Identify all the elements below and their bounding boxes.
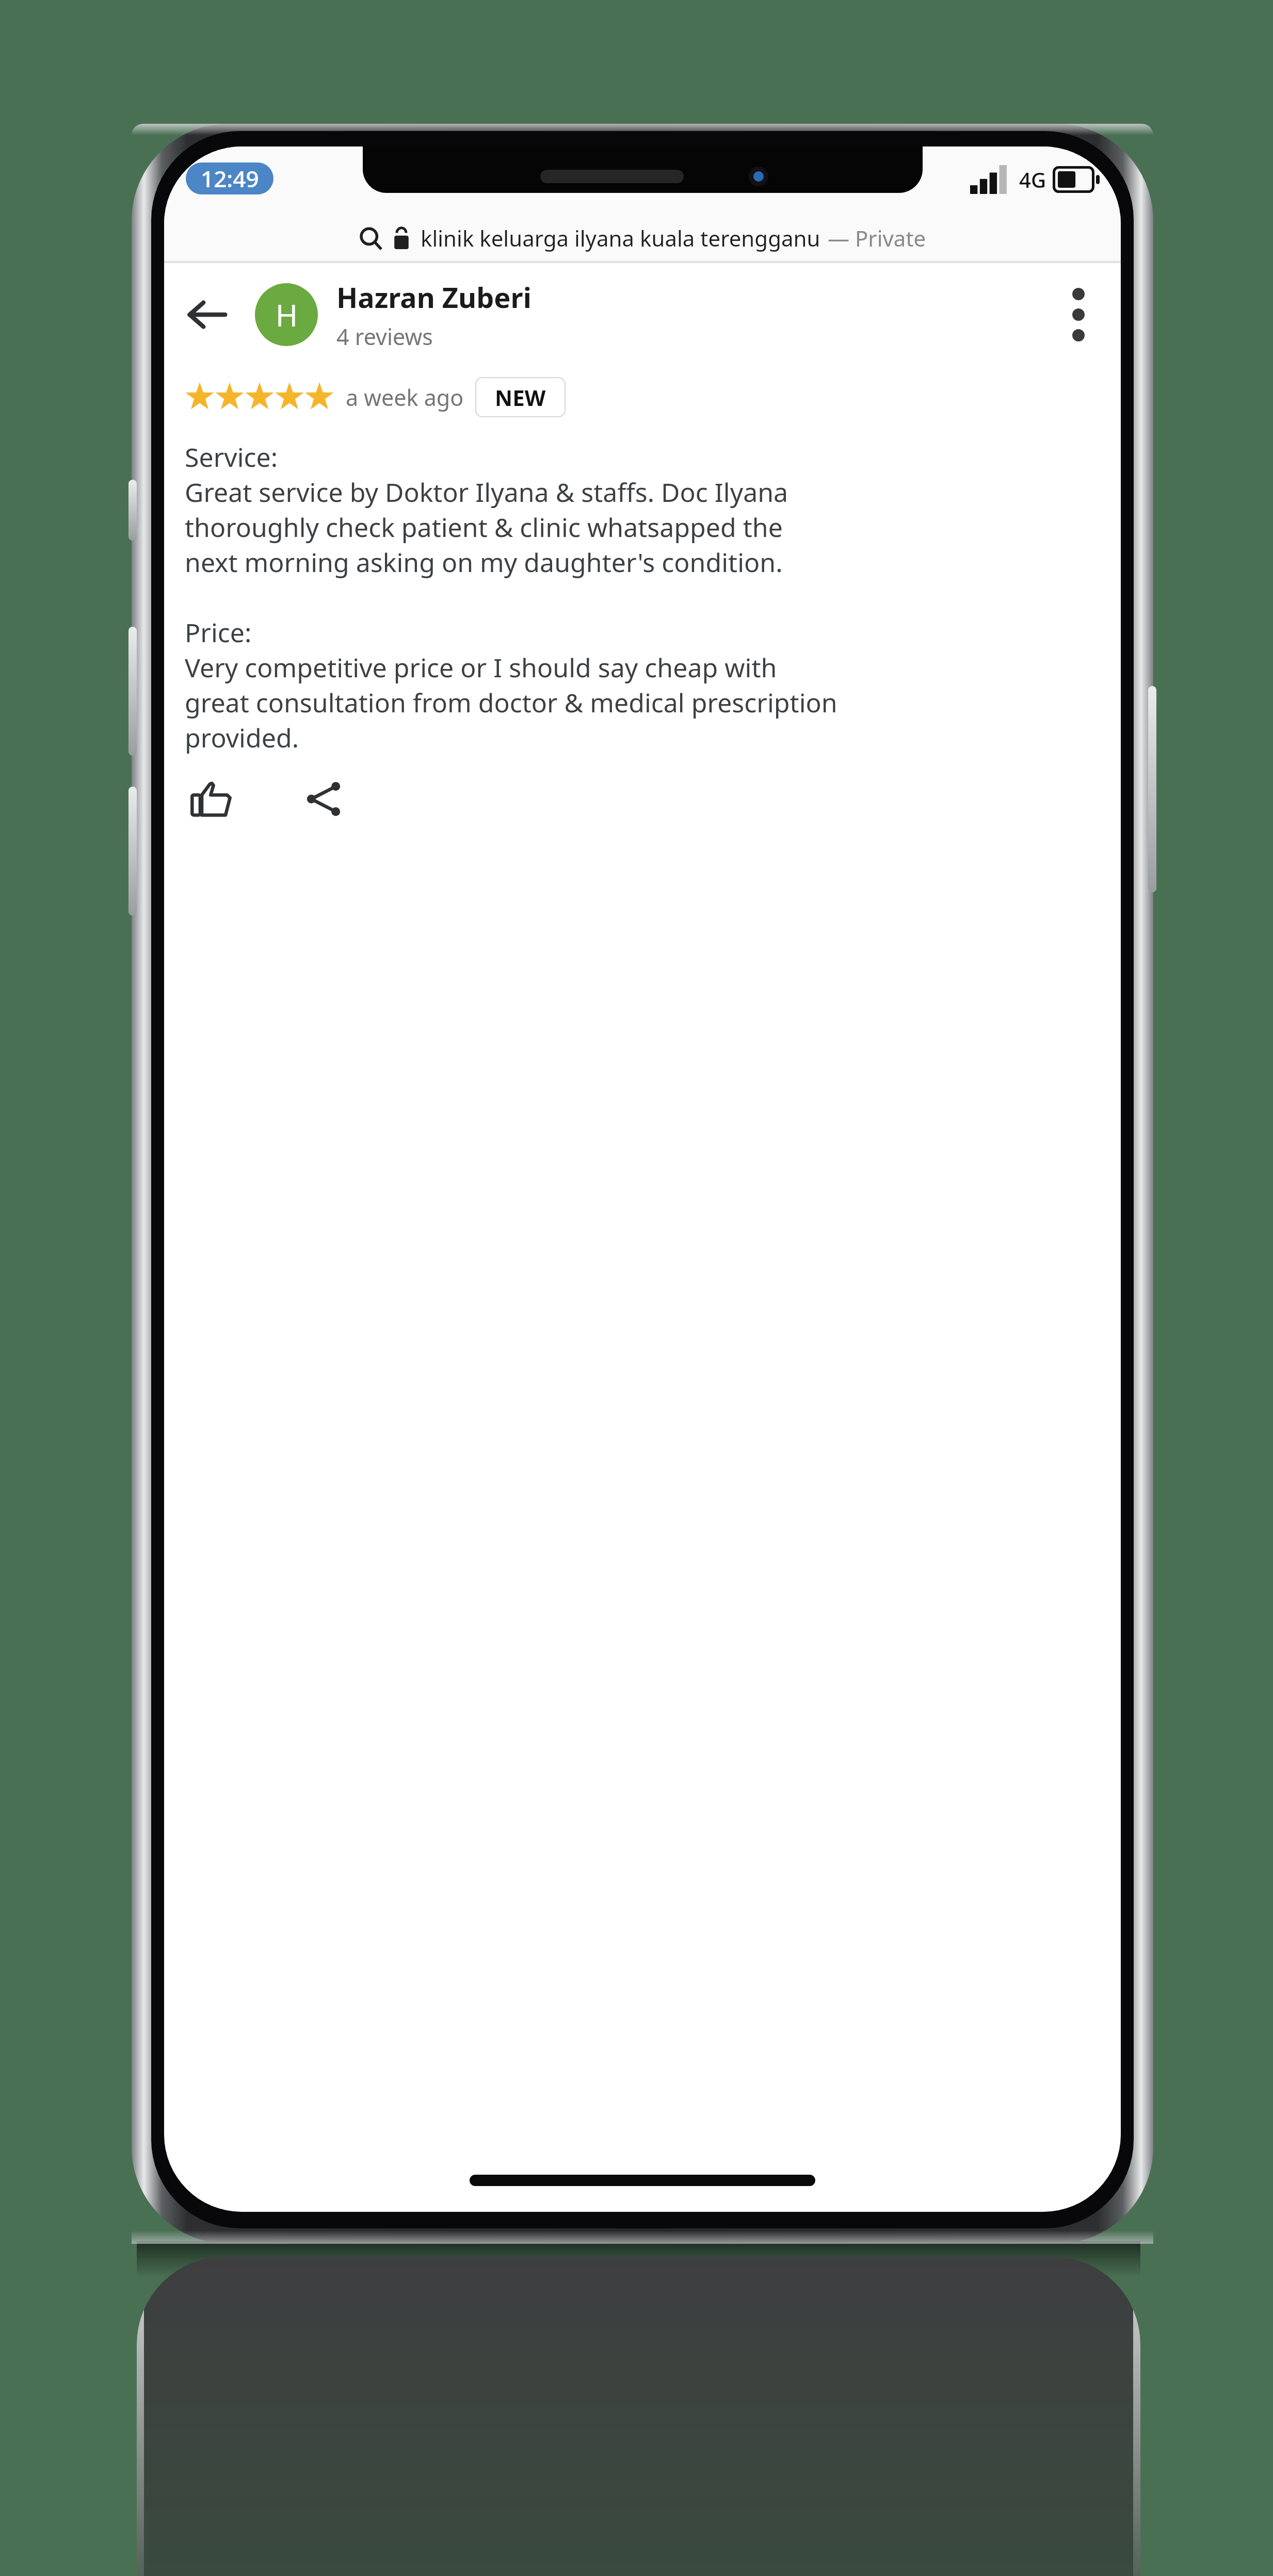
staticText: Very competitive price or I should say c… xyxy=(185,650,777,685)
button[interactable]: Hazran Zuberi xyxy=(336,278,531,352)
staticText: provided. xyxy=(185,720,299,755)
button[interactable]: NEW xyxy=(475,377,566,417)
staticText: 4G xyxy=(1019,166,1046,193)
button[interactable]: Share xyxy=(290,765,357,833)
staticText: 12:49 xyxy=(201,163,259,194)
button[interactable]: Like xyxy=(178,765,245,833)
staticText: a week ago xyxy=(346,382,464,413)
staticText: 4 reviews xyxy=(336,321,433,352)
staticText: H xyxy=(276,295,298,335)
staticText: Hazran Zuberi xyxy=(336,278,531,316)
staticText: NEW xyxy=(495,383,546,412)
staticText: Great service by Doktor Ilyana & staffs.… xyxy=(185,475,788,510)
button[interactable]: klinik keluarga ilyana kuala terengganu xyxy=(164,215,1121,261)
button[interactable]: H xyxy=(255,283,318,346)
staticText: thoroughly check patient & clinic whatsa… xyxy=(185,510,783,545)
button[interactable]: More options xyxy=(1048,284,1109,346)
staticText: Service: xyxy=(185,439,278,475)
staticText: klinik keluarga ilyana kuala terengganu xyxy=(421,223,820,253)
staticText: great consultation from doctor & medical… xyxy=(185,685,837,720)
staticText: next morning asking on my daughter's con… xyxy=(185,545,783,580)
staticText: — Private xyxy=(828,223,926,253)
staticText: Price: xyxy=(185,615,252,650)
button[interactable]: Back xyxy=(176,284,238,346)
